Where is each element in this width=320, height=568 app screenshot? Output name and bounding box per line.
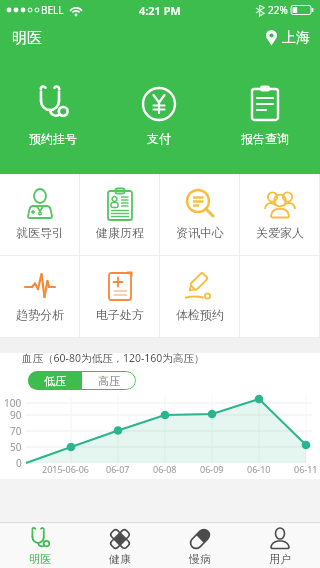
staticText: 报告查询 <box>241 131 289 146</box>
staticText: 血压（60-80为低压，120-160为高压） <box>22 351 205 365</box>
staticText: 体检预约 <box>176 307 224 322</box>
button[interactable]: 明医 <box>0 523 80 568</box>
staticText: 06-08 <box>153 463 177 475</box>
button[interactable]: 用户 <box>240 523 320 568</box>
button[interactable]: 预约挂号 <box>0 56 106 174</box>
staticText: 上海 <box>282 29 310 47</box>
staticText: 健康 <box>109 552 131 566</box>
staticText: 高压 <box>98 374 120 388</box>
staticText: 90 <box>10 408 22 422</box>
staticText: 06-10 <box>247 463 271 475</box>
staticText: 22% <box>268 3 288 17</box>
button[interactable]: 健康历程 <box>80 174 160 256</box>
staticText: 就医导引 <box>16 225 64 240</box>
staticText: 健康历程 <box>96 225 144 240</box>
staticText: 06-11 <box>294 463 318 475</box>
button[interactable]: 体检预约 <box>160 256 240 338</box>
button[interactable]: 就医导引 <box>0 174 80 256</box>
staticText: 06-07 <box>106 463 130 475</box>
staticText: 关爱家人 <box>256 225 304 240</box>
staticText: 预约挂号 <box>29 131 77 146</box>
button[interactable]: 高压 <box>82 371 136 390</box>
staticText: 趋势分析 <box>16 307 64 322</box>
button[interactable]: 低压 <box>28 371 82 390</box>
staticText: 70 <box>10 424 22 438</box>
button[interactable]: 关爱家人 <box>240 174 320 256</box>
staticText: 100 <box>4 396 22 410</box>
staticText: 06-09 <box>200 463 224 475</box>
button[interactable]: 慢病 <box>160 523 240 568</box>
staticText: 明医 <box>29 552 51 566</box>
button[interactable]: 报告查询 <box>212 56 318 174</box>
staticText: 50 <box>10 440 22 454</box>
staticText: 资讯中心 <box>176 225 224 240</box>
staticText: 明医 <box>12 29 42 48</box>
staticText: 0 <box>16 456 22 470</box>
button[interactable]: 上海 <box>265 29 310 47</box>
staticText: 4:21 PM <box>139 3 181 18</box>
button[interactable]: 资讯中心 <box>160 174 240 256</box>
button[interactable]: 健康 <box>80 523 160 568</box>
staticText: BELL <box>41 3 64 17</box>
staticText: 支付 <box>147 131 171 146</box>
staticText: 2015-06-06 <box>42 463 89 475</box>
staticText: 低压 <box>44 374 66 388</box>
button[interactable]: 趋势分析 <box>0 256 80 338</box>
staticText: 用户 <box>269 552 291 566</box>
staticText: 慢病 <box>189 552 211 566</box>
button[interactable]: 支付 <box>106 56 212 174</box>
button[interactable]: 电子处方 <box>80 256 160 338</box>
staticText: 电子处方 <box>96 307 144 322</box>
